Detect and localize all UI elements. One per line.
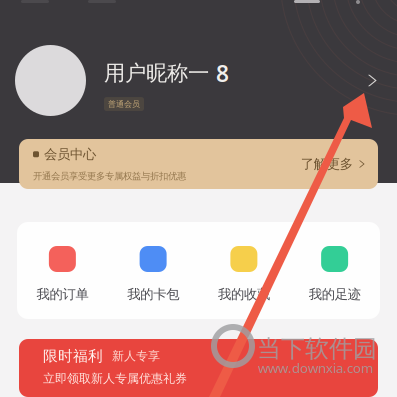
button[interactable]: 我的收藏 [198,222,289,319]
staticText: 用户昵称一 [104,60,209,86]
staticText: 我的卡包 [127,286,179,302]
button[interactable]: 我的足迹 [289,222,380,319]
staticText: 会员中心 [44,146,96,162]
staticText: 新人专享 [112,349,160,363]
button[interactable]: 我的卡包 [108,222,199,319]
button[interactable]: 会员中心 [0,139,397,189]
button[interactable]: 我的订单 [17,222,108,319]
staticText: 了解更多 [301,156,353,172]
staticText: 8 [216,58,229,88]
staticText: 限时福利 [43,347,103,365]
staticText: 我的足迹 [309,286,361,302]
staticText: 我的收藏 [218,286,270,302]
staticText: 开通会员享受更多专属权益与折扣优惠 [33,170,186,182]
staticText: 我的订单 [36,286,88,302]
staticText: 当下软件园 [257,334,377,363]
button[interactable]: 用户昵称一 [0,45,397,116]
staticText: 普通会员 [108,99,140,109]
staticText: www.downxia.com [258,359,373,377]
staticText: 立即领取新人专属优惠礼券 [43,371,187,386]
button[interactable]: 限时福利 [0,339,397,397]
